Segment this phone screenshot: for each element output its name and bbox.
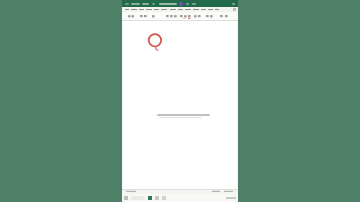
button[interactable]: Ribbon tab bbox=[200, 7, 206, 12]
button[interactable]: Ribbon tab bbox=[124, 7, 129, 12]
button[interactable]: Menu item bbox=[232, 3, 235, 5]
button[interactable]: Ribbon tab bbox=[177, 7, 183, 12]
button[interactable]: Ribbon tab bbox=[138, 7, 144, 12]
button[interactable]: Ribbon tab bbox=[160, 7, 168, 12]
button[interactable]: Menu item bbox=[152, 3, 155, 5]
button[interactable]: Ribbon tab bbox=[192, 7, 199, 12]
button[interactable]: Menu item bbox=[125, 3, 129, 5]
button[interactable]: Account bbox=[179, 2, 183, 6]
button[interactable]: Menu item bbox=[131, 3, 140, 5]
button[interactable]: Menu item bbox=[159, 3, 177, 5]
button[interactable]: Ribbon tab bbox=[214, 7, 219, 12]
button[interactable]: Menu item bbox=[142, 3, 149, 5]
button[interactable]: Ribbon tab bbox=[130, 7, 137, 12]
button[interactable]: Ribbon tab bbox=[169, 7, 176, 12]
button[interactable]: Ribbon tab bbox=[153, 7, 159, 12]
button[interactable]: Ribbon tab bbox=[145, 7, 152, 12]
button[interactable]: Ribbon tab bbox=[207, 7, 213, 12]
button[interactable]: Menu item bbox=[186, 3, 189, 5]
button[interactable]: Menu item bbox=[192, 3, 196, 5]
button[interactable]: Ribbon tab bbox=[184, 7, 191, 12]
